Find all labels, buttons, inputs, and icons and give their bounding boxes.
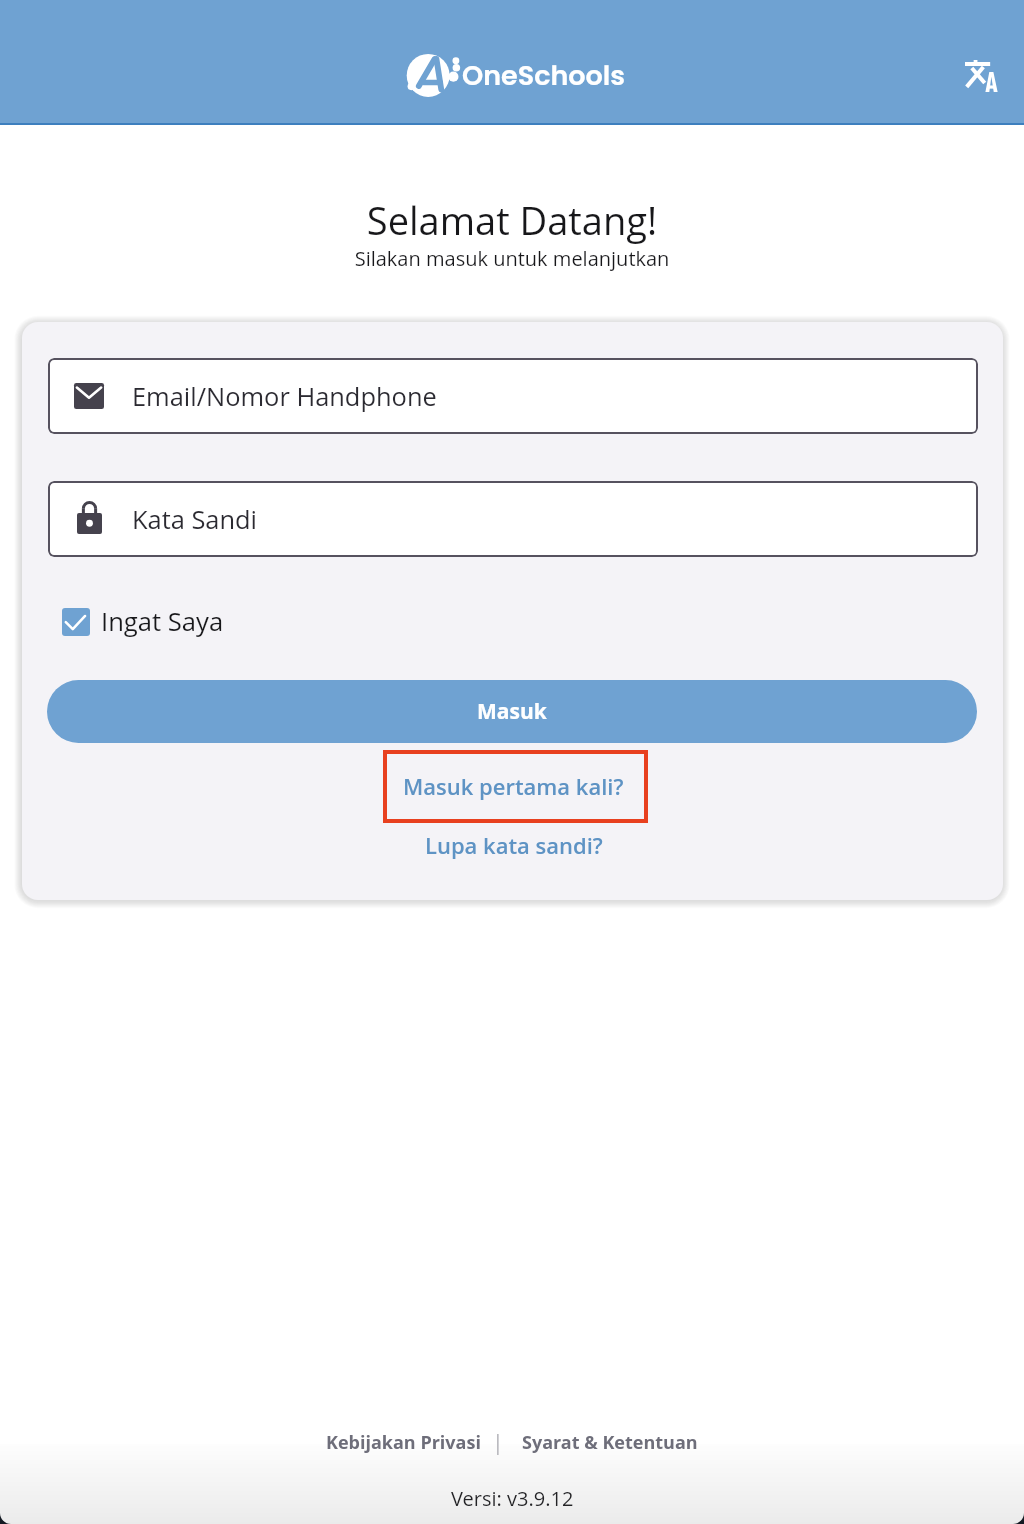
staticText: Email/Nomor Handphone (132, 379, 437, 414)
staticText: Ingat Saya (101, 604, 224, 639)
staticText: Selamat Datang! (0, 194, 1024, 246)
button[interactable]: Syarat & Ketentuan (522, 1425, 698, 1460)
staticText: Silakan masuk untuk melanjutkan (0, 245, 1024, 272)
staticText: Kata Sandi (132, 502, 258, 537)
staticText: Syarat & Ketentuan (522, 1430, 698, 1455)
button[interactable]: Change language (954, 48, 1010, 104)
staticText: OneSchools (462, 57, 625, 95)
button[interactable]: Ingat Saya (62, 599, 224, 644)
button[interactable]: Email/Nomor Handphone (48, 358, 978, 434)
button[interactable]: Kebijakan Privasi (326, 1425, 481, 1460)
staticText: Masuk (477, 697, 547, 726)
staticText: Lupa kata sandi? (425, 830, 603, 860)
staticText: Versi: v3.9.12 (451, 1485, 574, 1512)
staticText: | (492, 1428, 504, 1457)
button[interactable]: Kata Sandi (48, 481, 978, 557)
staticText: Masuk pertama kali? (403, 771, 624, 801)
button[interactable]: Masuk pertama kali? (383, 750, 648, 823)
button[interactable]: Masuk (47, 680, 977, 743)
button[interactable]: Lupa kata sandi? (400, 824, 628, 866)
staticText: Kebijakan Privasi (326, 1430, 481, 1455)
